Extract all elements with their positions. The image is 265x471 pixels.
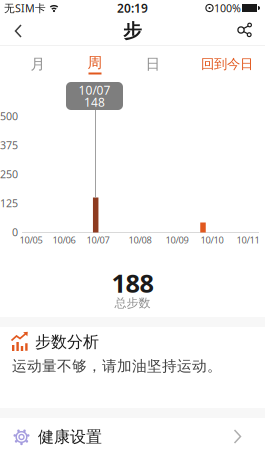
staticText: 月 <box>30 55 45 73</box>
staticText: 无SIM卡 <box>4 1 46 15</box>
staticText: 10/11 <box>236 234 259 246</box>
staticText: 375 <box>0 138 18 152</box>
button[interactable]: 回到今日 <box>192 50 262 78</box>
staticText: 健康设置 <box>38 427 102 447</box>
staticText: 总步数 <box>114 296 150 310</box>
staticText: 188 <box>111 266 153 300</box>
staticText: 10/07 <box>78 82 110 98</box>
staticText: 100% <box>214 1 241 15</box>
staticText: 10/05 <box>19 234 42 246</box>
staticText: 250 <box>0 167 18 181</box>
staticText: 周 <box>87 53 102 71</box>
staticText: 0 <box>12 225 18 239</box>
staticText: 运动量不够，请加油坚持运动。 <box>12 357 222 375</box>
staticText: 步 <box>123 19 142 42</box>
button[interactable]: 健康设置 <box>0 418 265 471</box>
button[interactable]: 月 <box>16 50 60 78</box>
button[interactable]: 周 <box>73 50 117 78</box>
staticText: 日 <box>145 55 160 73</box>
staticText: 10/08 <box>128 234 151 246</box>
staticText: 回到今日 <box>201 56 253 72</box>
staticText: 10/06 <box>52 234 75 246</box>
staticText: 10/07 <box>86 234 109 246</box>
staticText: 500 <box>0 109 18 123</box>
staticText: 10/10 <box>200 234 223 246</box>
button[interactable]: Back <box>0 18 36 44</box>
staticText: 20:19 <box>117 0 148 16</box>
staticText: 10/09 <box>165 234 188 246</box>
staticText: 125 <box>0 196 18 210</box>
staticText: 148 <box>84 94 105 110</box>
button[interactable]: Share <box>226 17 260 43</box>
button[interactable]: 日 <box>131 50 175 78</box>
staticText: 步数分析 <box>35 332 99 352</box>
